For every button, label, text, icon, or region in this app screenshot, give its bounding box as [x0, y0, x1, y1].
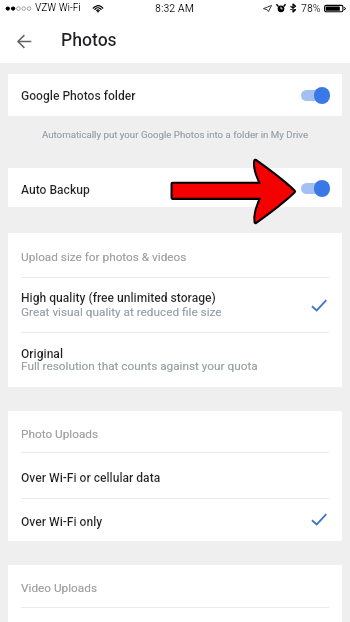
staticText: Original — [21, 347, 63, 361]
button[interactable] — [8, 332, 342, 387]
staticText: Great visual quality at reduced file siz… — [21, 305, 222, 319]
staticText: Over Wi-Fi or cellular data — [21, 471, 161, 485]
staticText: Upload size for photos & videos — [21, 250, 187, 264]
staticText: VZW Wi-Fi — [35, 2, 81, 14]
button[interactable] — [8, 565, 342, 607]
staticText: Google Photos folder — [21, 89, 136, 103]
staticText: High quality (free unlimited storage) — [21, 291, 216, 305]
button[interactable]: Back — [9, 26, 39, 56]
button[interactable] — [8, 233, 342, 277]
staticText: Over Wi-Fi only — [21, 515, 103, 529]
staticText: Full resolution that counts against your… — [21, 359, 258, 373]
staticText: 78% — [301, 2, 321, 14]
button[interactable] — [8, 74, 342, 116]
button[interactable] — [8, 452, 342, 498]
staticText: Photo Uploads — [21, 427, 99, 441]
button[interactable] — [8, 168, 342, 207]
button[interactable] — [8, 498, 342, 541]
button[interactable] — [8, 411, 342, 452]
staticText: Photos — [61, 30, 117, 51]
staticText: Video Uploads — [21, 581, 97, 595]
staticText: Auto Backup — [21, 183, 90, 197]
staticText: 8:32 AM — [155, 2, 194, 14]
staticText: Automatically put your Google Photos int… — [10, 129, 340, 140]
button[interactable] — [8, 277, 342, 332]
